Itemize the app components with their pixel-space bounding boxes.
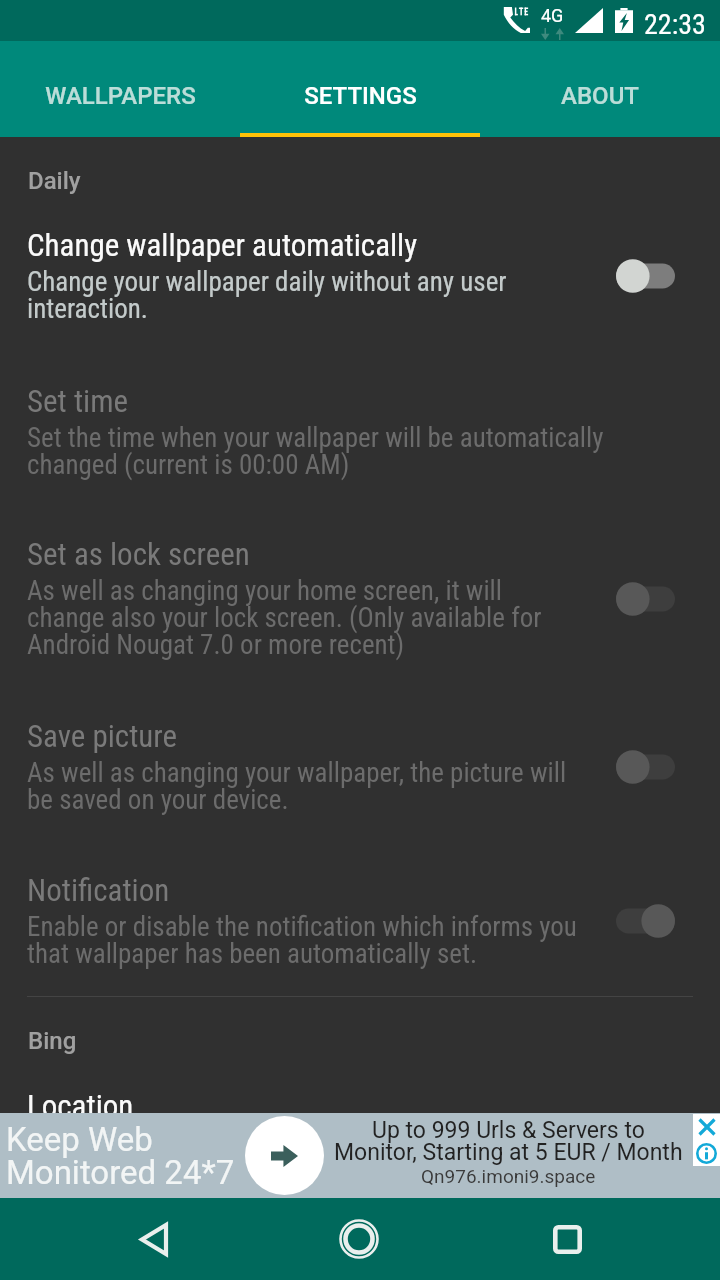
button[interactable]: Back	[114, 1198, 194, 1280]
staticText: Set time	[27, 383, 129, 419]
staticText: Location	[27, 1088, 134, 1113]
button[interactable]: Recent apps	[527, 1198, 607, 1280]
button[interactable]: Open advertisement	[245, 1116, 324, 1195]
staticText: Bing	[28, 1027, 77, 1055]
staticText: WALLPAPERS	[45, 82, 196, 110]
staticText: Notification	[27, 872, 170, 908]
staticText: Set as lock screen	[27, 536, 250, 572]
staticText: Change wallpaper automatically	[27, 227, 418, 263]
button[interactable]: Toggle setting	[581, 901, 675, 941]
staticText: As well as changing your home screen, it…	[27, 575, 579, 661]
button[interactable]: Toggle setting	[581, 579, 675, 619]
button[interactable]: Change wallpaper automatically	[0, 227, 720, 325]
button[interactable]: Toggle setting	[581, 747, 675, 787]
button[interactable]: Home	[319, 1198, 399, 1280]
staticText: 4G	[541, 5, 564, 26]
button[interactable]: ABOUT	[480, 41, 720, 137]
button[interactable]: WALLPAPERS	[0, 41, 240, 137]
staticText: Change your wallpaper daily without any …	[27, 266, 579, 325]
staticText: As well as changing your wallpaper, the …	[27, 757, 579, 816]
staticText: Save picture	[27, 718, 177, 754]
staticText: Keep Web	[6, 1120, 153, 1159]
staticText: Set the time when your wallpaper will be…	[27, 422, 631, 481]
button[interactable]: Notification	[0, 872, 720, 970]
button[interactable]: Ad information	[693, 1140, 720, 1166]
button[interactable]: Set time	[0, 383, 720, 481]
button[interactable]: Close ad	[693, 1114, 720, 1140]
button[interactable]: Toggle setting	[581, 256, 675, 296]
staticText: ABOUT	[561, 82, 639, 110]
staticText: Monitored 24*7	[6, 1153, 235, 1192]
button[interactable]: Set as lock screen	[0, 536, 720, 661]
staticText: SETTINGS	[304, 82, 417, 110]
staticText: Enable or disable the notification which…	[27, 911, 579, 970]
staticText: Qn976.imoni9.space	[421, 1165, 596, 1187]
staticText: 22:33	[644, 8, 706, 41]
button[interactable]: Save picture	[0, 718, 720, 816]
button[interactable]: SETTINGS	[240, 41, 480, 137]
button[interactable]: Advertisement	[0, 1113, 720, 1198]
staticText: Up to 999 Urls & Servers to	[372, 1117, 645, 1144]
staticText: Monitor, Starting at 5 EUR / Month	[334, 1139, 683, 1166]
staticText: Daily	[28, 167, 81, 195]
